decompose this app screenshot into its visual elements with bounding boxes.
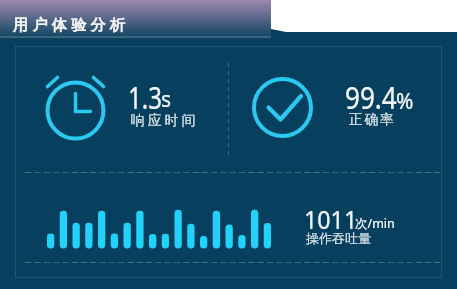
staticText: 用户体验分析	[13, 16, 130, 35]
staticText: 1011	[304, 202, 358, 236]
staticText: 正确率	[349, 111, 396, 129]
staticText: %	[396, 87, 414, 116]
staticText: 99.4	[345, 77, 397, 118]
staticText: 响应时间	[129, 112, 197, 130]
staticText: 操作吞吐量	[306, 230, 371, 246]
staticText: 次/min	[355, 215, 395, 232]
staticText: s	[161, 85, 172, 114]
staticText: 1.3	[128, 77, 162, 118]
